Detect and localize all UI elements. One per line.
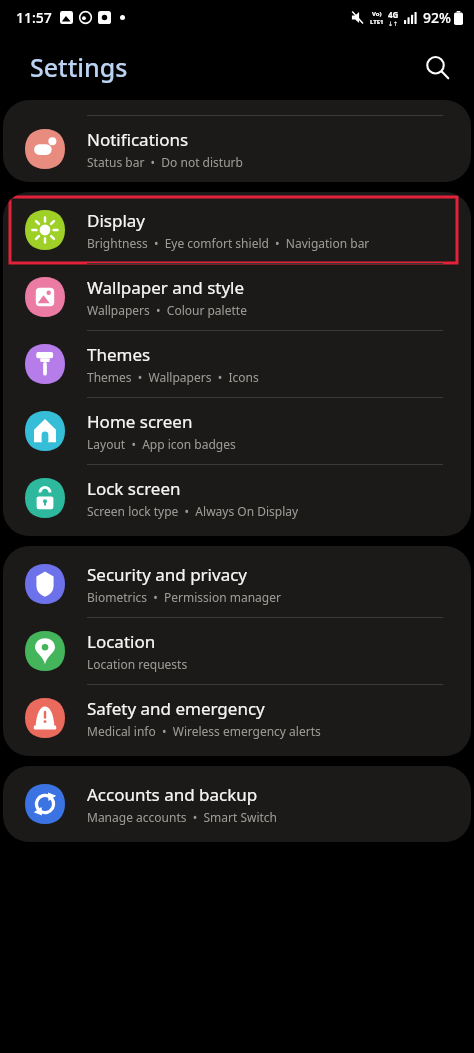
staticText: Display	[87, 209, 145, 232]
button[interactable]: Home screen	[3, 398, 471, 464]
staticText: Home screen	[87, 410, 193, 433]
staticText: Medical info • Wireless emergency alerts	[87, 723, 321, 739]
button[interactable]: Notifications	[3, 116, 471, 182]
button[interactable]: Lock screen	[3, 465, 471, 531]
button[interactable]: Security and privacy	[3, 551, 471, 617]
staticText: Brightness • Eye comfort shield • Naviga…	[87, 235, 370, 251]
staticText: 92%	[423, 8, 451, 27]
staticText: Settings	[30, 50, 128, 84]
staticText: Biometrics • Permission manager	[87, 589, 281, 605]
staticText: Screen lock type • Always On Display	[87, 503, 299, 519]
button[interactable]: Safety and emergency	[3, 685, 471, 751]
staticText: Location requests	[87, 656, 188, 672]
staticText: 4G	[388, 9, 399, 20]
staticText: Location	[87, 630, 156, 653]
staticText: Themes	[87, 343, 151, 366]
staticText: Safety and emergency	[87, 697, 265, 720]
staticText: Status bar • Do not disturb	[87, 154, 243, 170]
button[interactable]: Wallpaper and style	[3, 264, 471, 330]
button[interactable]: Search	[414, 44, 460, 90]
staticText: Security and privacy	[87, 563, 248, 586]
staticText: Lock screen	[87, 477, 181, 500]
staticText: LTE1	[370, 18, 384, 26]
staticText: Wallpaper and style	[87, 276, 245, 299]
staticText: ↓↑	[388, 20, 399, 27]
button[interactable]: Themes	[3, 331, 471, 397]
staticText: Wallpapers • Colour palette	[87, 302, 247, 318]
staticText: Accounts and backup	[87, 783, 258, 806]
button[interactable]: Display	[3, 197, 471, 263]
staticText: Themes • Wallpapers • Icons	[87, 369, 259, 385]
staticText: Manage accounts • Smart Switch	[87, 809, 278, 825]
button[interactable]: Accounts and backup	[3, 771, 471, 837]
staticText: Vo)	[372, 10, 382, 18]
staticText: 11:57	[16, 8, 52, 27]
staticText: Layout • App icon badges	[87, 436, 236, 452]
button[interactable]: Location	[3, 618, 471, 684]
staticText: Notifications	[87, 128, 189, 151]
